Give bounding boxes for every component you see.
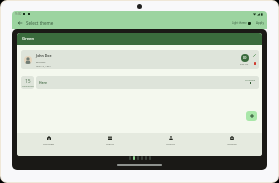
- staticText: Green: [22, 36, 35, 42]
- button[interactable]: Here: [36, 76, 259, 89]
- button[interactable]: Settings: [201, 133, 262, 156]
- staticText: Select theme: [26, 20, 54, 26]
- staticText: Schedule: [245, 78, 256, 81]
- staticText: IO: [243, 56, 247, 60]
- staticText: Settings: [227, 142, 237, 145]
- staticText: Birthday: [36, 60, 46, 63]
- staticText: Events: [106, 142, 114, 145]
- staticText: Overview: [43, 142, 54, 145]
- button[interactable]: Friends: [140, 133, 201, 156]
- staticText: Apply: [256, 21, 264, 25]
- staticText: 9:30: [15, 12, 22, 16]
- button[interactable]: Back: [16, 19, 24, 27]
- staticText: May 14, 1991: [36, 64, 51, 67]
- staticText: 15: [25, 78, 31, 85]
- button[interactable]: Overview: [17, 133, 79, 156]
- button[interactable]: Add: [246, 111, 257, 121]
- staticText: 9:00 AM: [240, 63, 249, 66]
- button[interactable]: John Doe: [21, 50, 259, 69]
- button[interactable]: Events: [79, 133, 140, 156]
- button[interactable]: Light theme: [232, 21, 251, 25]
- staticText: John Doe: [36, 53, 52, 58]
- button[interactable]: Apply: [256, 21, 264, 25]
- staticText: Light theme: [232, 21, 247, 25]
- staticText: Here: [39, 80, 48, 85]
- button[interactable]: 15: [21, 76, 34, 89]
- staticText: Wednesday: [22, 85, 34, 88]
- staticText: Friends: [166, 142, 175, 145]
